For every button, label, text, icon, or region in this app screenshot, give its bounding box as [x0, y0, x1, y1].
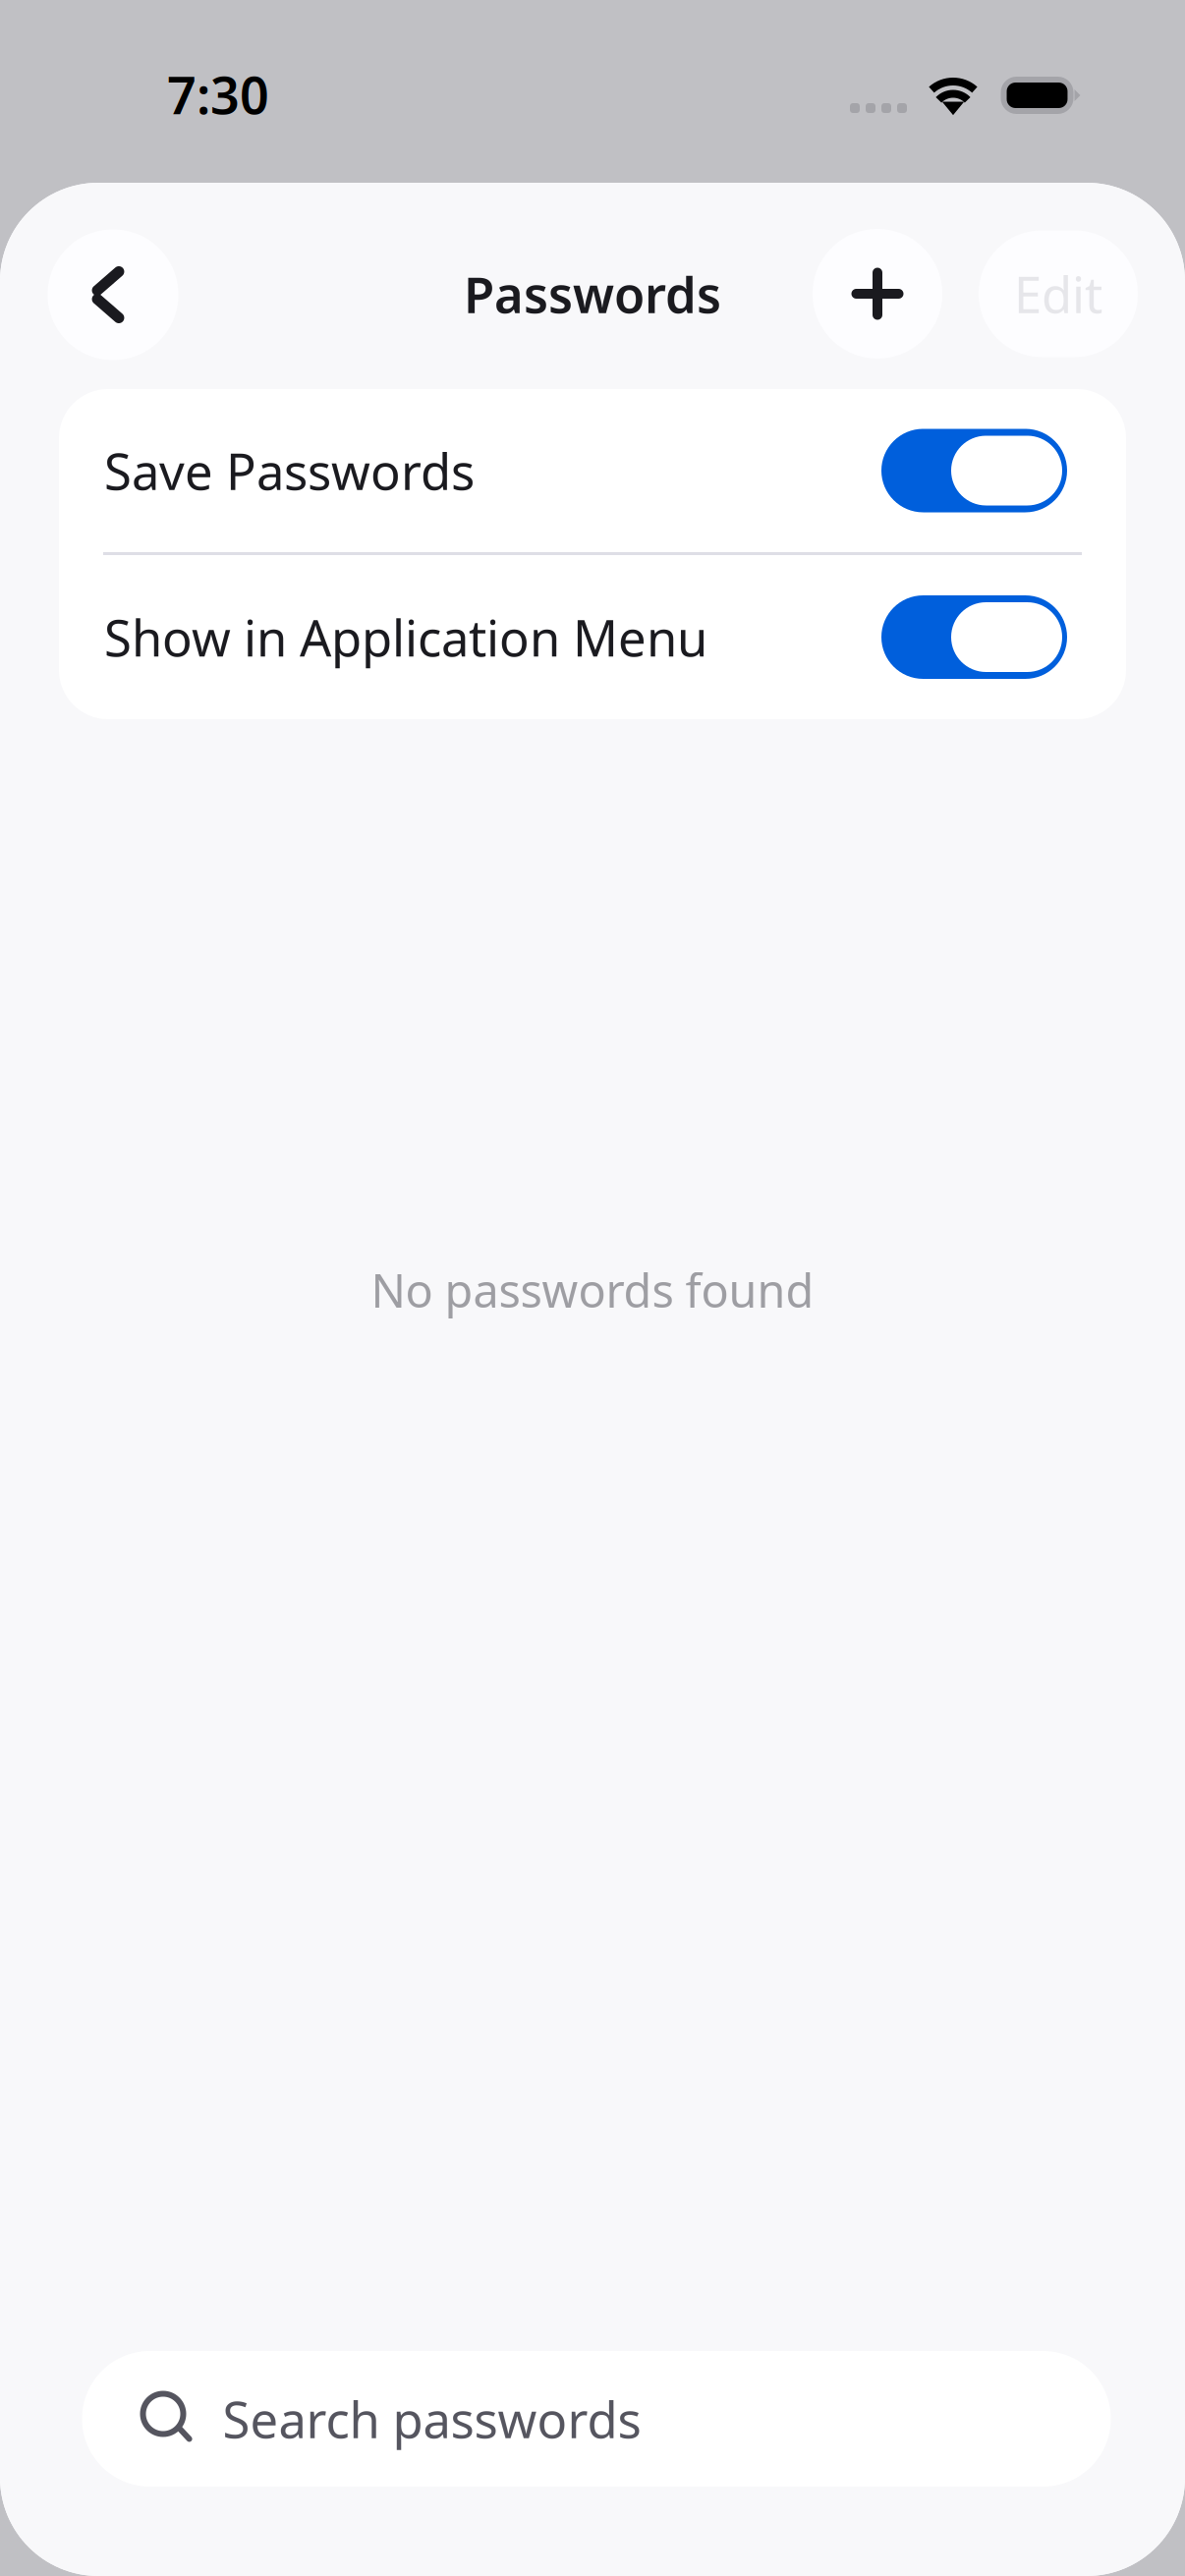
button[interactable]: Search passwords: [82, 2351, 1111, 2487]
staticText: Edit: [1014, 261, 1102, 327]
staticText: Passwords: [464, 261, 721, 327]
staticText: Search passwords: [223, 2386, 641, 2452]
staticText: No passwords found: [371, 1260, 814, 1320]
button[interactable]: Edit: [979, 230, 1138, 357]
staticText: Show in Application Menu: [104, 604, 707, 670]
staticText: Save Passwords: [104, 438, 475, 504]
button[interactable]: Save Passwords: [59, 389, 1126, 552]
button[interactable]: Add password: [813, 229, 942, 359]
button[interactable]: Back: [48, 229, 178, 360]
button[interactable]: Show in Application Menu: [59, 555, 1126, 719]
staticText: 7:30: [167, 60, 269, 128]
